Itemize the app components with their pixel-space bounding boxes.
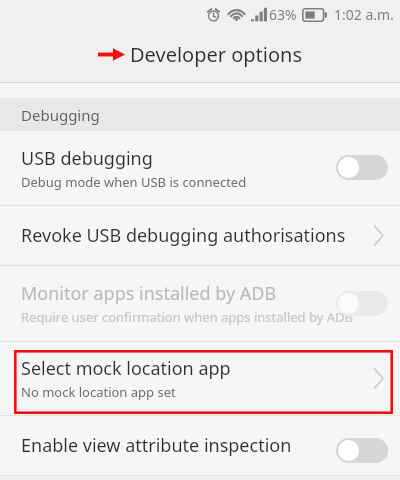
staticText: Require user confirmation when apps inst… — [21, 308, 353, 326]
button[interactable]: Toggle switch — [336, 155, 388, 180]
button[interactable]: Open — [372, 225, 386, 246]
staticText: Select mock location app — [21, 356, 231, 381]
staticText: 63% — [269, 5, 297, 24]
button[interactable]: Monitor apps installed by ADB — [0, 266, 400, 341]
staticText: Debug mode when USB is connected — [21, 173, 247, 191]
button[interactable]: Select mock location app — [0, 342, 400, 415]
button[interactable]: Revoke USB debugging authorisations — [0, 206, 400, 265]
button[interactable]: Toggle switch — [336, 291, 388, 316]
staticText: Enable view attribute inspection — [21, 433, 292, 458]
staticText: Monitor apps installed by ADB — [21, 281, 277, 306]
staticText: No mock location app set — [21, 383, 176, 401]
button[interactable]: Open — [372, 368, 386, 389]
staticText: Revoke USB debugging authorisations — [21, 223, 346, 248]
button[interactable]: USB debugging — [0, 131, 400, 205]
button[interactable]: Enable view attribute inspection — [0, 416, 400, 475]
staticText: Developer options — [130, 41, 303, 68]
staticText: 1:02 a.m. — [334, 5, 394, 24]
staticText: Debugging — [21, 105, 100, 125]
button[interactable]: Toggle switch — [336, 438, 388, 463]
staticText: USB debugging — [21, 146, 153, 171]
